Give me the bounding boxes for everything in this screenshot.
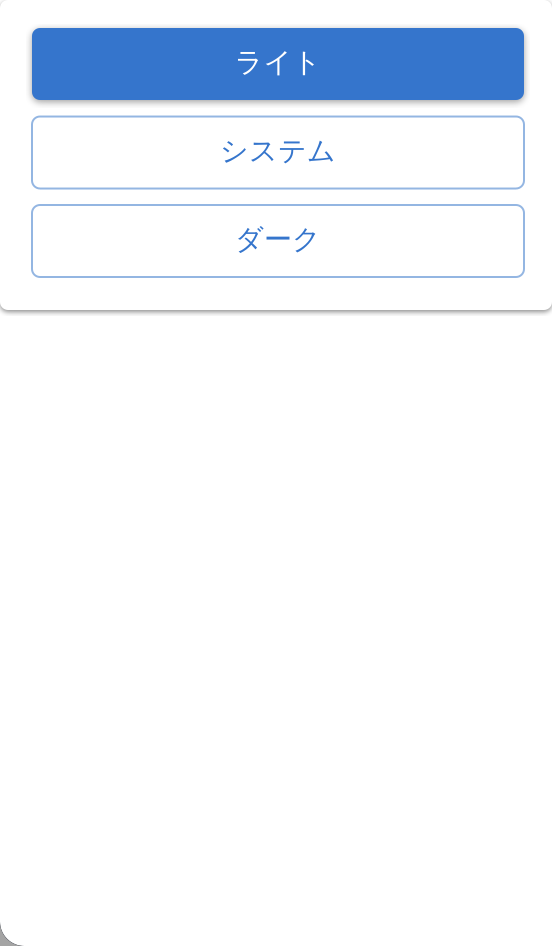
staticText: ライト <box>234 45 321 80</box>
button[interactable]: ライト <box>32 28 524 100</box>
staticText: システム <box>220 133 336 169</box>
button[interactable]: ダーク <box>32 205 524 277</box>
staticText: ダーク <box>235 222 321 257</box>
button[interactable]: システム <box>32 116 524 188</box>
